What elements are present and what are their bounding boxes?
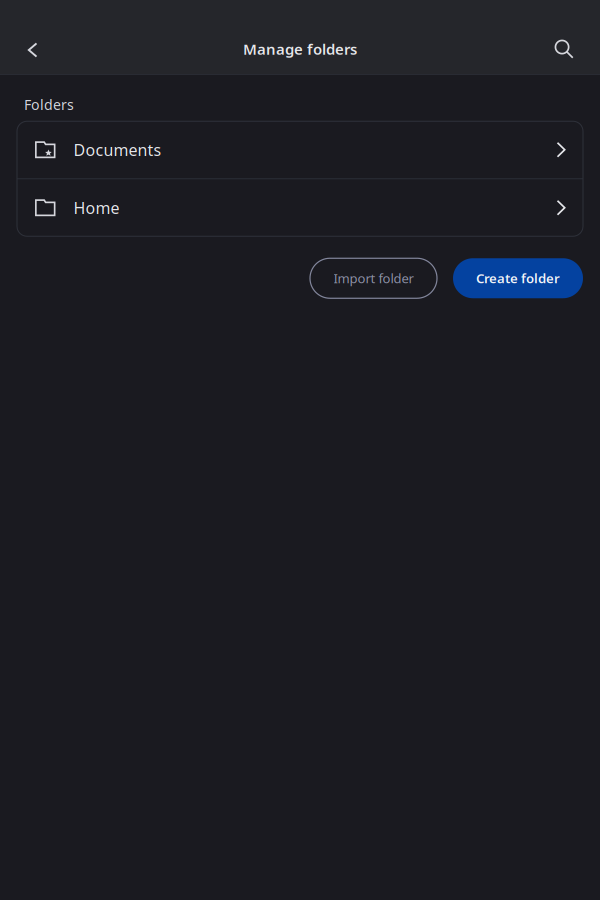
button[interactable]: Search — [541, 24, 587, 74]
staticText: Create folder — [476, 269, 560, 287]
staticText: Import folder — [333, 269, 413, 287]
staticText: Documents — [73, 139, 161, 161]
button[interactable]: Back — [9, 24, 55, 74]
button[interactable]: Documents — [17, 121, 583, 178]
button[interactable]: Import folder — [310, 258, 437, 298]
button[interactable]: Create folder — [453, 258, 583, 298]
button[interactable]: Home — [17, 179, 583, 236]
staticText: Manage folders — [243, 39, 357, 59]
staticText: Folders — [24, 95, 74, 114]
staticText: Home — [73, 197, 119, 219]
